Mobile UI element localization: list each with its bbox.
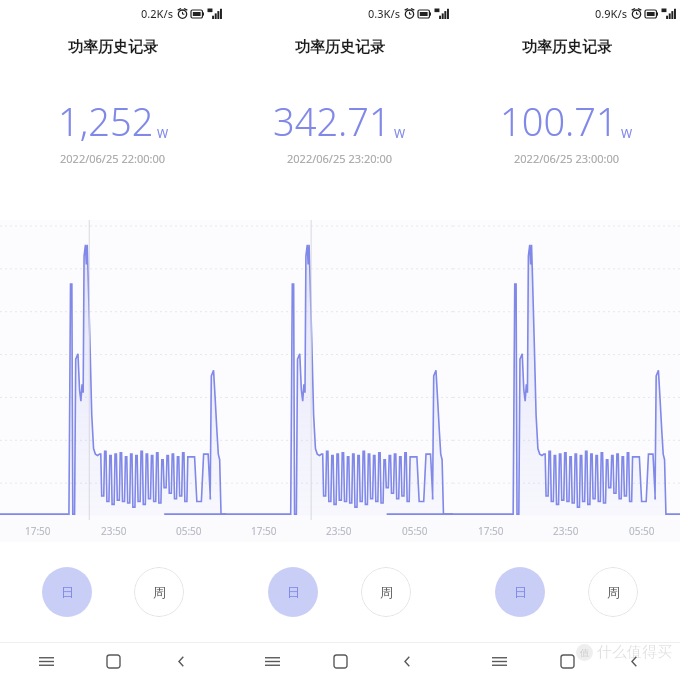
staticText: 05:50 bbox=[629, 524, 655, 538]
staticText: W bbox=[621, 125, 633, 141]
button[interactable]: Back bbox=[612, 643, 656, 680]
staticText: 0.2K/s bbox=[141, 6, 174, 21]
staticText: 2022/06/25 22:00:00 bbox=[60, 151, 166, 166]
staticText: 17:50 bbox=[25, 524, 51, 538]
staticText: 值 bbox=[580, 647, 589, 658]
staticText: 0.9K/s bbox=[595, 6, 628, 21]
staticText: 功率历史记录 bbox=[68, 38, 158, 57]
button[interactable]: 日 bbox=[495, 567, 545, 617]
button[interactable]: 周 bbox=[588, 567, 638, 617]
staticText: 周 bbox=[153, 584, 166, 600]
staticText: 23:50 bbox=[553, 524, 579, 538]
staticText: 周 bbox=[380, 584, 393, 600]
button[interactable]: 周 bbox=[134, 567, 184, 617]
staticText: 0.3K/s bbox=[368, 6, 401, 21]
staticText: 功率历史记录 bbox=[522, 38, 612, 57]
staticText: 日 bbox=[514, 584, 527, 600]
staticText: 17:50 bbox=[251, 524, 277, 538]
staticText: 23:50 bbox=[101, 524, 127, 538]
staticText: 2022/06/25 23:20:00 bbox=[287, 151, 393, 166]
staticText: 23:50 bbox=[326, 524, 352, 538]
staticText: 100.71 bbox=[500, 95, 618, 147]
button[interactable]: Home bbox=[545, 643, 589, 680]
staticText: 2022/06/25 23:00:00 bbox=[514, 151, 620, 166]
button[interactable]: 周 bbox=[361, 567, 411, 617]
staticText: 1,252 bbox=[58, 95, 154, 147]
staticText: 05:50 bbox=[402, 524, 428, 538]
button[interactable]: Recent apps bbox=[477, 643, 521, 680]
staticText: 什么值得买 bbox=[597, 643, 672, 662]
staticText: 05:50 bbox=[176, 524, 202, 538]
button[interactable]: 日 bbox=[268, 567, 318, 617]
staticText: 342.71 bbox=[273, 95, 391, 147]
button[interactable]: Home bbox=[318, 643, 362, 680]
button[interactable]: Home bbox=[91, 643, 135, 680]
button[interactable]: Back bbox=[159, 643, 203, 680]
button[interactable]: 日 bbox=[42, 567, 92, 617]
button[interactable]: Recent apps bbox=[24, 643, 68, 680]
staticText: 日 bbox=[287, 584, 300, 600]
staticText: 周 bbox=[607, 584, 620, 600]
staticText: W bbox=[157, 125, 169, 141]
staticText: 功率历史记录 bbox=[295, 38, 385, 57]
button[interactable]: Recent apps bbox=[250, 643, 294, 680]
staticText: 17:50 bbox=[478, 524, 504, 538]
button[interactable]: Back bbox=[385, 643, 429, 680]
staticText: 日 bbox=[61, 584, 74, 600]
staticText: W bbox=[394, 125, 406, 141]
